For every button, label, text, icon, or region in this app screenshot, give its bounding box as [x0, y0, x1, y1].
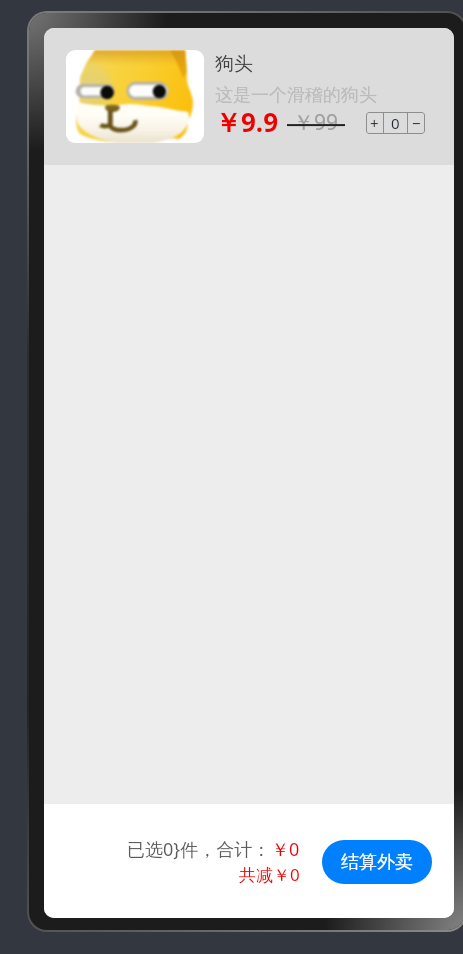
staticText: 狗头: [215, 52, 253, 76]
staticText: 这是一个滑稽的狗头: [215, 84, 377, 107]
button[interactable]: 狗头: [44, 28, 454, 165]
button[interactable]: 结算外卖: [322, 840, 432, 884]
staticText: ￥99: [293, 108, 339, 137]
staticText: 共减￥0: [239, 863, 300, 886]
staticText: +: [370, 113, 379, 133]
staticText: 已选0}件，合计：: [127, 837, 271, 862]
staticText: ￥0: [271, 837, 300, 862]
staticText: 结算外卖: [341, 851, 413, 874]
button[interactable]: Increase quantity: [366, 112, 383, 134]
staticText: −: [412, 113, 421, 133]
button[interactable]: Decrease quantity: [408, 112, 425, 134]
staticText: ￥9.9: [215, 104, 279, 140]
staticText: 0: [391, 113, 400, 133]
